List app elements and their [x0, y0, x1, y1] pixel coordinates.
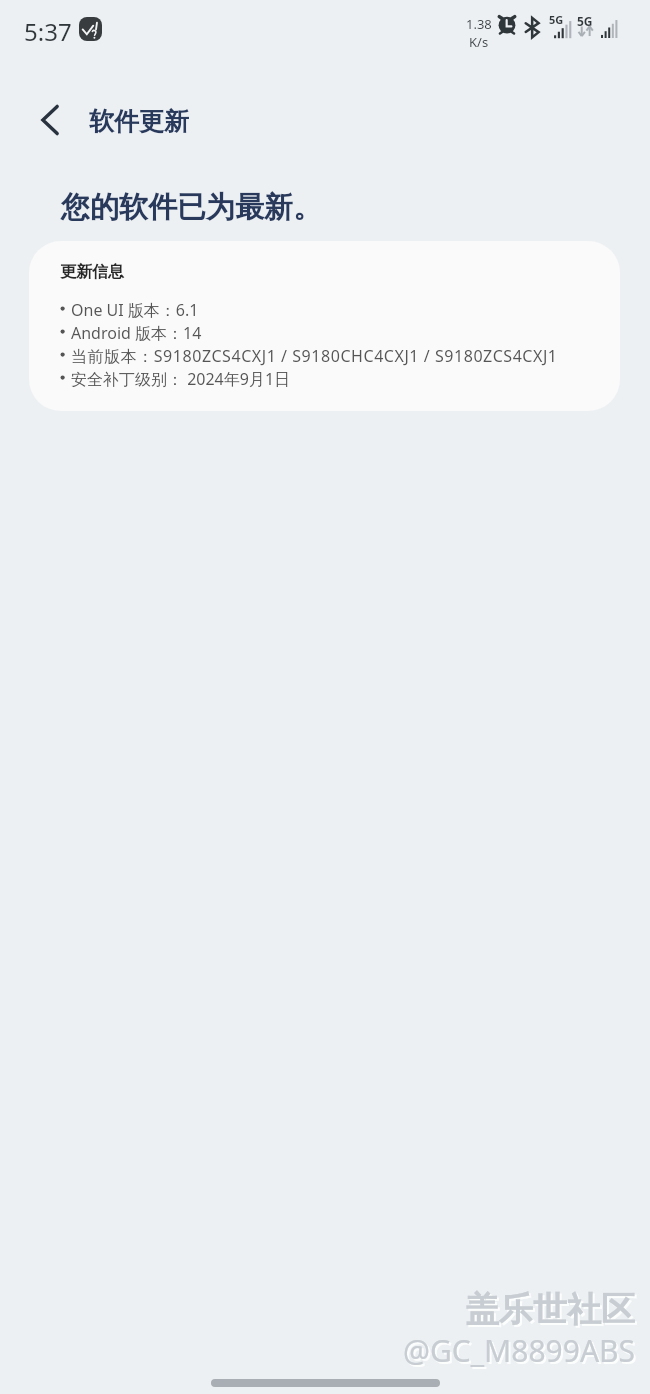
staticText: 5G: [577, 13, 593, 29]
staticText: 安全补丁级别： 2024年9月1日: [71, 368, 291, 390]
staticText: 5:37: [24, 15, 72, 48]
staticText: 盖乐世社区: [467, 1290, 637, 1333]
staticText: 您的软件已为最新。: [61, 189, 322, 226]
other: Notification: [79, 17, 102, 41]
staticText: K/s: [469, 33, 489, 51]
staticText: 软件更新: [89, 106, 189, 137]
staticText: 盖乐世社区: [465, 1288, 635, 1331]
staticText: @GC_M8899ABS: [405, 1332, 638, 1373]
staticText: One UI 版本：6.1: [71, 299, 199, 321]
button[interactable]: 更新信息: [29, 241, 620, 411]
staticText: 1.38: [466, 15, 492, 33]
staticText: 5G: [549, 12, 564, 27]
staticText: @GC_M8899ABS: [403, 1330, 636, 1371]
staticText: 当前版本：S9180ZCS4CXJ1 / S9180CHC4CXJ1 / S91…: [71, 345, 558, 367]
staticText: 更新信息: [60, 262, 124, 282]
staticText: Android 版本：14: [71, 322, 202, 344]
button[interactable]: Back: [25, 96, 73, 144]
